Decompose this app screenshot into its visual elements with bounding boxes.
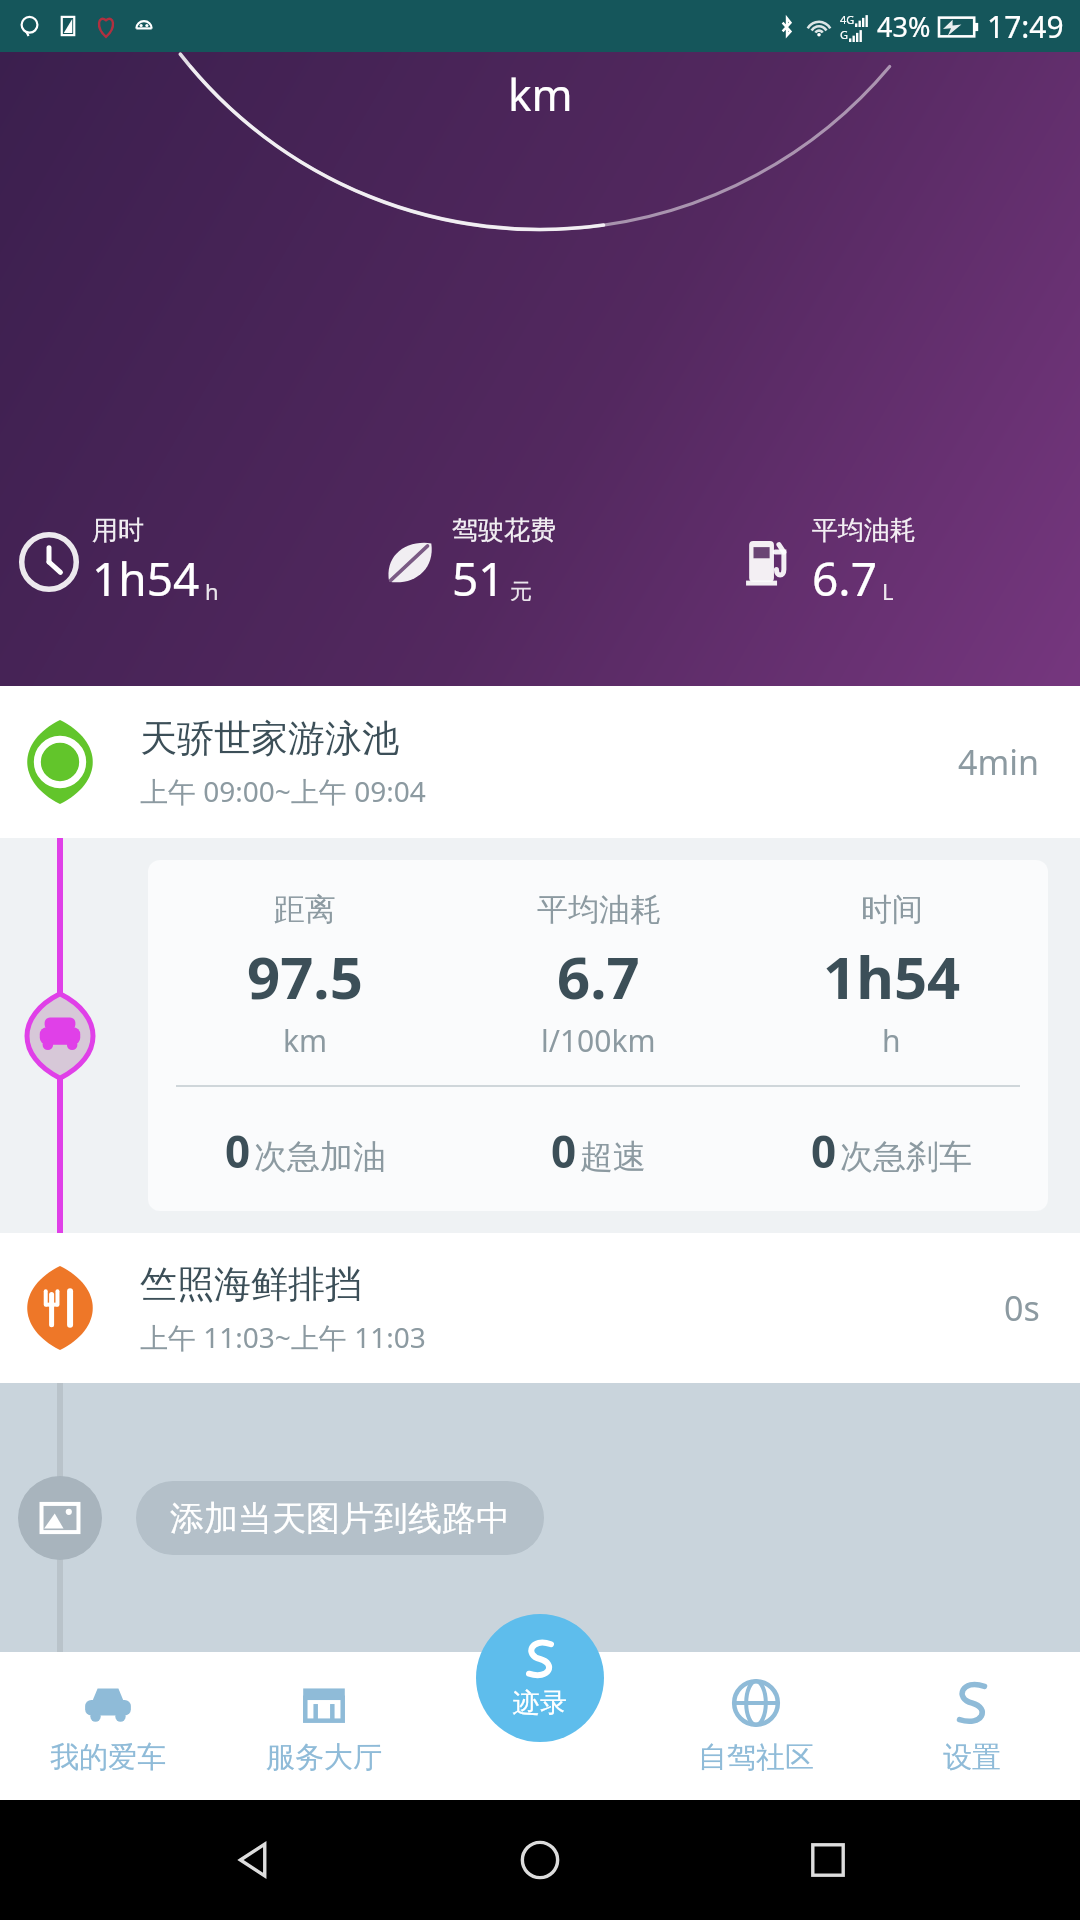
staticText: 次急刹车 xyxy=(840,1136,972,1178)
staticText: 天骄世家游泳池 xyxy=(140,715,399,762)
button[interactable]: 自驾社区 xyxy=(648,1652,864,1800)
staticText: h xyxy=(205,576,219,606)
staticText: 自驾社区 xyxy=(698,1739,814,1776)
staticText: 用时 xyxy=(92,514,144,547)
staticText: h xyxy=(882,1020,901,1061)
staticText: 1h54 xyxy=(92,547,200,610)
staticText: 51 xyxy=(452,547,505,610)
staticText: 设置 xyxy=(943,1739,1001,1776)
button[interactable]: Back xyxy=(218,1825,288,1895)
staticText: 距离 xyxy=(274,890,336,929)
staticText: 上午 11:03~上午 11:03 xyxy=(140,1318,426,1356)
button[interactable]: Home xyxy=(505,1825,575,1895)
staticText: 0 xyxy=(551,1121,577,1181)
staticText: 添加当天图片到线路中 xyxy=(170,1497,510,1540)
staticText: 元 xyxy=(510,578,532,606)
staticText: km xyxy=(283,1020,328,1061)
staticText: km xyxy=(508,64,573,124)
staticText: 0 xyxy=(225,1121,251,1181)
button[interactable]: 竺照海鲜排挡 xyxy=(0,1233,1080,1383)
staticText: 驾驶花费 xyxy=(452,514,556,547)
staticText: G xyxy=(840,27,849,42)
staticText: 6.7 xyxy=(812,547,877,610)
staticText: l/100km xyxy=(541,1020,656,1061)
staticText: 4G xyxy=(840,12,855,27)
staticText: 时间 xyxy=(861,890,923,929)
button[interactable]: 添加当天图片到线路中 xyxy=(136,1481,544,1555)
staticText: 0 xyxy=(811,1121,837,1181)
staticText: 97.5 xyxy=(247,937,363,1016)
staticText: 上午 09:00~上午 09:04 xyxy=(140,772,426,810)
staticText: 1h54 xyxy=(823,937,961,1016)
staticText: 0s xyxy=(1004,1285,1040,1331)
staticText: 平均油耗 xyxy=(812,514,916,547)
staticText: 迹录 xyxy=(513,1686,567,1720)
staticText: 17:49 xyxy=(987,6,1064,47)
staticText: 超速 xyxy=(580,1136,646,1178)
button[interactable]: 设置 xyxy=(864,1652,1080,1800)
staticText: 服务大厅 xyxy=(266,1739,382,1776)
staticText: 4min xyxy=(958,739,1040,785)
staticText: 竺照海鲜排挡 xyxy=(140,1261,362,1308)
button[interactable]: 距离 xyxy=(148,860,1048,1211)
staticText: 平均油耗 xyxy=(537,890,661,929)
button[interactable]: 天骄世家游泳池 xyxy=(0,686,1080,838)
staticText: 6.7 xyxy=(557,937,640,1016)
staticText: 43% xyxy=(877,8,931,45)
button[interactable]: 我的爱车 xyxy=(0,1652,216,1800)
button[interactable]: Recents xyxy=(793,1825,863,1895)
staticText: 次急加油 xyxy=(254,1136,386,1178)
staticText: L xyxy=(882,576,894,606)
staticText: 我的爱车 xyxy=(50,1739,166,1776)
button[interactable]: 迹录 xyxy=(476,1614,604,1742)
button[interactable]: Photos xyxy=(18,1476,102,1560)
button[interactable]: 服务大厅 xyxy=(216,1652,432,1800)
